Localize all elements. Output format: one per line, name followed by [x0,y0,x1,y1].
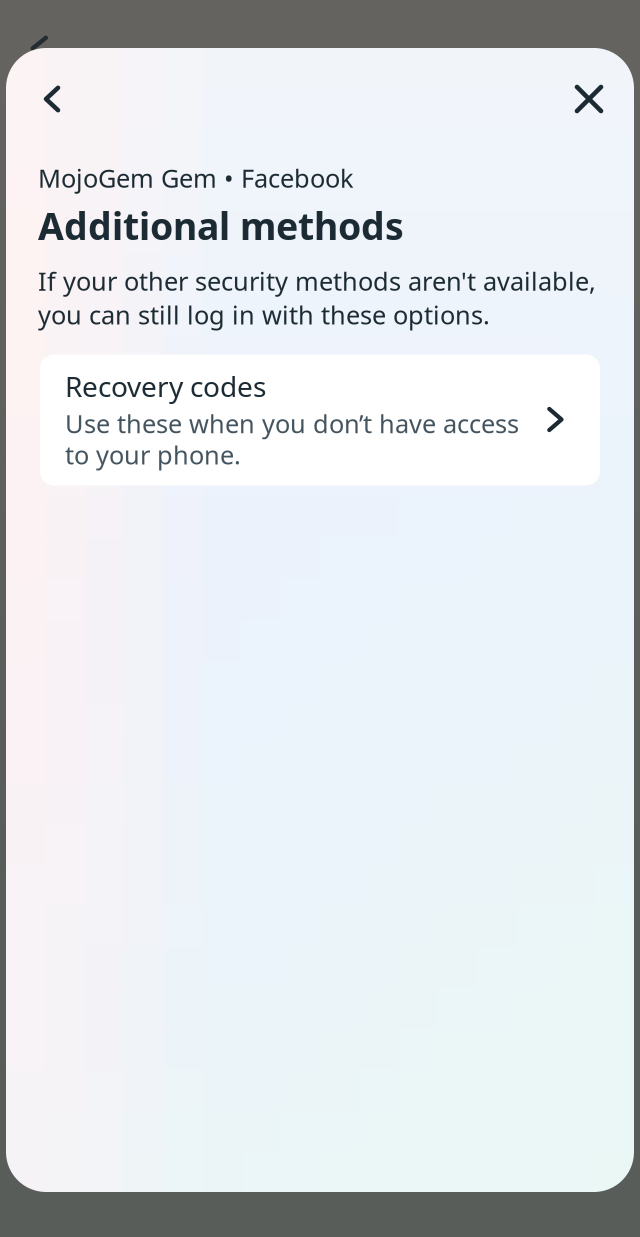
button[interactable]: Recovery codes [40,354,600,485]
staticText: MojoGem Gem • Facebook [38,161,354,195]
button[interactable]: Back [24,71,80,127]
button[interactable]: Close [561,71,617,127]
staticText: Use these when you don’t have access to … [65,407,519,471]
staticText: If your other security methods aren't av… [38,264,596,331]
staticText: Recovery codes [65,367,266,405]
staticText: Additional methods [38,201,404,250]
